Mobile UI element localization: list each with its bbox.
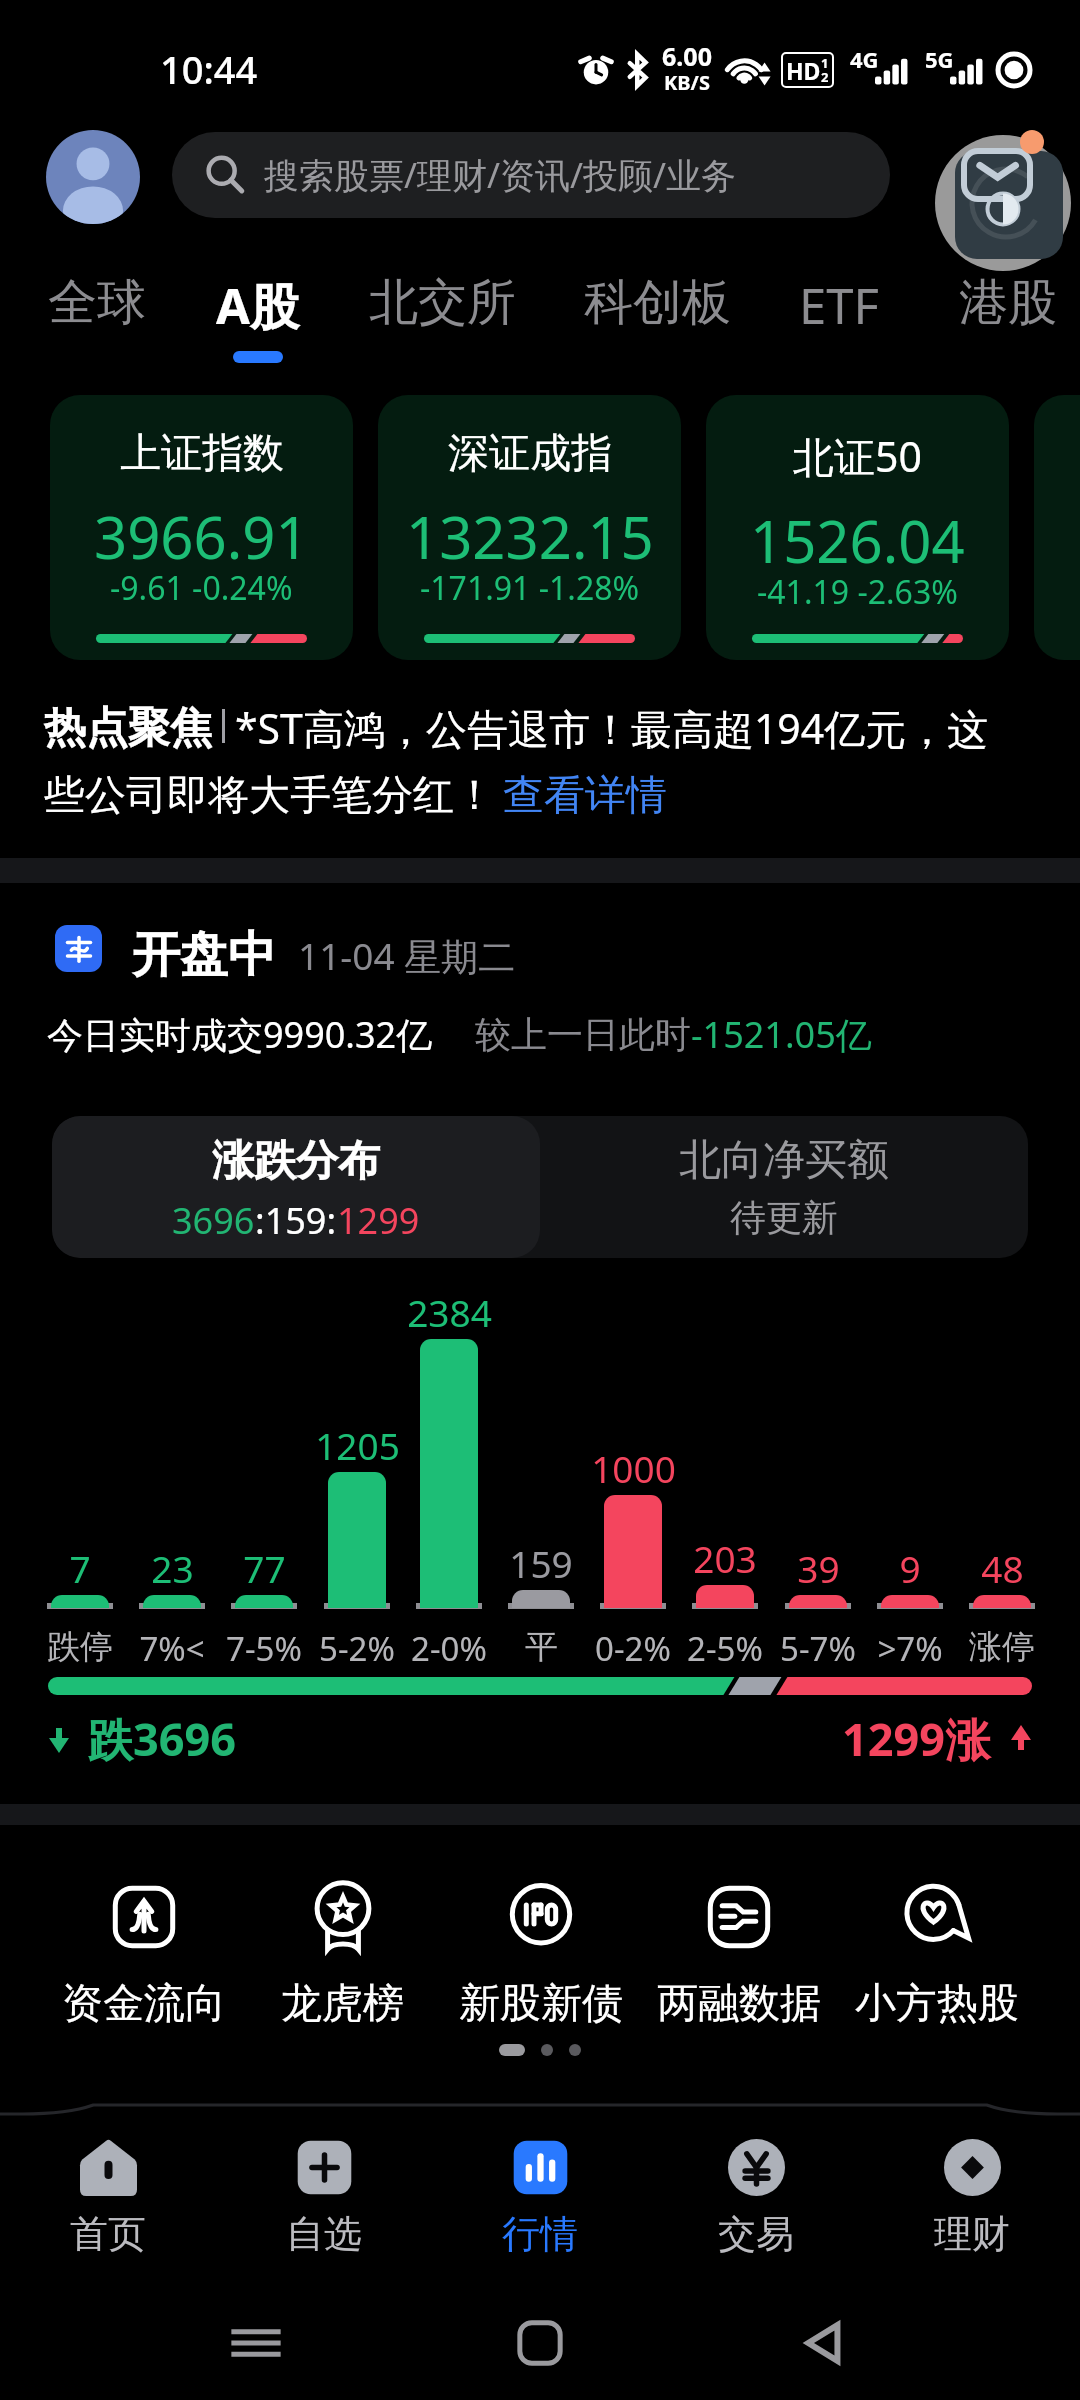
staticText: 理财: [934, 2210, 1010, 2258]
button[interactable]: Messages: [930, 125, 1080, 275]
button[interactable]: 港股: [959, 262, 1057, 374]
button[interactable]: 搜索股票/理财/资讯/投顾/业务: [172, 132, 890, 218]
staticText: 7-5%: [226, 1626, 302, 1671]
staticText: 今日实时成交9990.32亿: [47, 1010, 433, 1059]
staticText: 1205: [315, 1420, 400, 1470]
staticText: 两融数据: [657, 1978, 821, 2030]
staticText: 首页: [70, 2210, 146, 2258]
staticText: 资金流向: [62, 1978, 226, 2030]
button[interactable]: 北证50: [706, 395, 1009, 660]
staticText: 10:44: [160, 43, 258, 95]
staticText: 3966.91: [94, 497, 309, 576]
staticText: 交易: [718, 2210, 794, 2258]
staticText: 6.00: [662, 39, 712, 73]
button[interactable]: 行情: [432, 2120, 648, 2258]
staticText: 1299涨: [842, 1708, 990, 1769]
staticText: 平: [525, 1626, 558, 1668]
staticText: 港股: [959, 272, 1057, 334]
staticText: 跌停: [47, 1626, 113, 1668]
staticText: 热点聚焦: [44, 702, 212, 755]
staticText: 5-2%: [319, 1626, 395, 1671]
staticText: 搜索股票/理财/资讯/投顾/业务: [264, 151, 737, 199]
staticText: 科创板: [584, 272, 731, 334]
staticText: 23: [151, 1543, 194, 1593]
button[interactable]: A股: [216, 262, 299, 374]
staticText: 1526.04: [750, 501, 965, 580]
button[interactable]: Profile: [46, 130, 140, 224]
staticText: 11-04 星期二: [298, 930, 516, 981]
staticText: 北向净买额: [679, 1134, 889, 1187]
staticText: 5G: [925, 44, 954, 74]
staticText: 北证50: [793, 428, 922, 484]
staticText: 3696: [172, 1196, 255, 1245]
button[interactable]: 查看详情: [503, 770, 667, 822]
staticText: 上证指数: [120, 428, 284, 480]
button[interactable]: 北交所: [369, 262, 516, 374]
button[interactable]: 上证指数: [50, 395, 353, 660]
staticText: KB/S: [664, 69, 710, 96]
button[interactable]: 北向净买额: [540, 1116, 1028, 1258]
staticText: 深证成指: [448, 428, 612, 480]
staticText: 2: [821, 68, 829, 86]
staticText: -171.91 -1.28%: [420, 566, 640, 610]
staticText: 159: [509, 1538, 573, 1588]
staticText: 39: [797, 1543, 840, 1593]
staticText: 北交所: [369, 272, 516, 334]
button[interactable]: 交易: [648, 2120, 864, 2258]
button[interactable]: Home: [512, 2315, 568, 2371]
staticText: 新股新债: [459, 1978, 623, 2030]
staticText: 些公司即将大手笔分红！: [44, 770, 495, 822]
button[interactable]: ETF: [799, 262, 879, 374]
staticText: 全球: [48, 272, 146, 334]
button[interactable]: 小方热股: [838, 1882, 1036, 2030]
staticText: :159:: [255, 1196, 337, 1245]
staticText: -9.61 -0.24%: [110, 566, 293, 610]
button[interactable]: Recents: [228, 2315, 284, 2371]
staticText: ETF: [799, 272, 879, 339]
staticText: A股: [216, 272, 299, 339]
staticText: 9: [899, 1543, 921, 1593]
staticText: 涨跌分布: [212, 1135, 380, 1188]
staticText: 2384: [407, 1287, 492, 1337]
staticText: 0-2%: [595, 1626, 671, 1671]
staticText: 5-7%: [780, 1626, 856, 1671]
staticText: -41.19 -2.63%: [757, 570, 958, 614]
staticText: 较上一日此时: [475, 1012, 691, 1057]
staticText: -1521.05亿: [691, 1010, 872, 1059]
staticText: 2-5%: [687, 1626, 763, 1671]
button[interactable]: 首页: [0, 2120, 216, 2258]
staticText: 行情: [502, 2210, 578, 2258]
staticText: 自选: [286, 2210, 362, 2258]
staticText: 开盘中: [132, 925, 276, 985]
staticText: 1: [821, 54, 829, 72]
staticText: 涨停: [969, 1626, 1035, 1668]
staticText: 48: [981, 1543, 1024, 1593]
staticText: 2-0%: [411, 1626, 487, 1671]
staticText: 203: [693, 1533, 757, 1583]
staticText: 77: [243, 1543, 286, 1593]
button[interactable]: 资金流向: [44, 1882, 243, 2030]
button[interactable]: 自选: [216, 2120, 432, 2258]
staticText: 小方热股: [855, 1978, 1019, 2030]
button[interactable]: 理财: [864, 2120, 1080, 2258]
button[interactable]: 深证成指: [378, 395, 681, 660]
button[interactable]: 科创板: [584, 262, 731, 374]
staticText: HD: [786, 55, 821, 86]
staticText: >7%: [877, 1626, 943, 1671]
button[interactable]: 龙虎榜: [243, 1882, 442, 2030]
staticText: *ST高鸿，公告退市！最高超194亿元，这: [235, 700, 989, 756]
staticText: 13232.15: [406, 497, 654, 576]
staticText: 7: [69, 1543, 91, 1593]
staticText: 跌3696: [88, 1708, 236, 1769]
staticText: 1000: [591, 1443, 676, 1493]
button[interactable]: 两融数据: [640, 1882, 838, 2030]
button[interactable]: 新股新债: [442, 1882, 640, 2030]
button[interactable]: 涨跌分布: [52, 1116, 540, 1258]
button[interactable]: Back: [796, 2315, 852, 2371]
staticText: 7%<: [139, 1626, 205, 1671]
button[interactable]: 全球: [48, 262, 146, 374]
staticText: 1299: [337, 1196, 420, 1245]
staticText: 4G: [850, 44, 879, 74]
staticText: 待更新: [730, 1195, 838, 1240]
staticText: 龙虎榜: [281, 1978, 404, 2030]
